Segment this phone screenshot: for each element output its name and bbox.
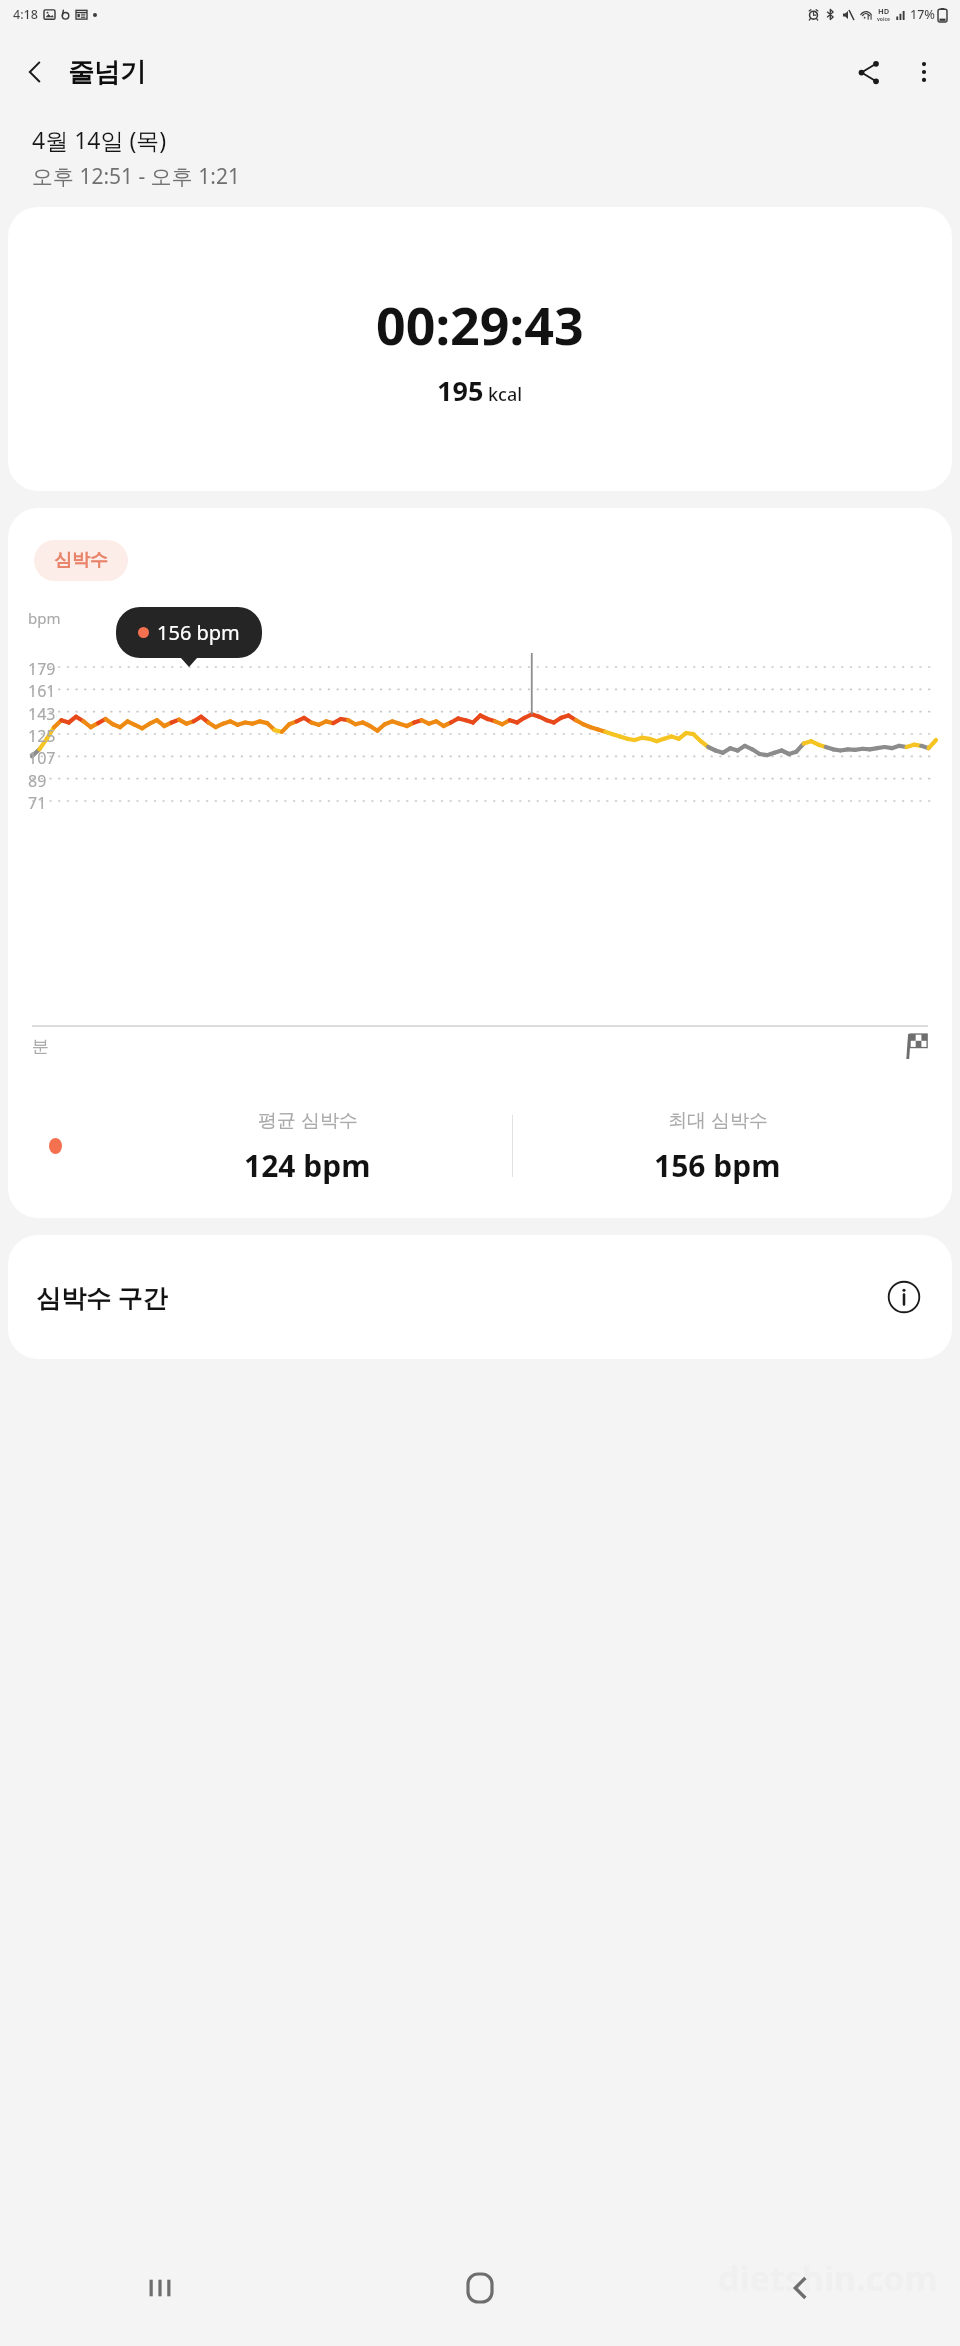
staticText: 평균 심박수 (258, 1107, 358, 1133)
staticText: 오후 12:51 - 오후 1:21 (32, 162, 240, 191)
staticText: 4월 14일 (목) (32, 124, 167, 155)
staticText: 심박수 구간 (36, 1280, 168, 1314)
staticText: 124 bpm (244, 1145, 371, 1186)
staticText: dietshin.com (718, 2255, 938, 2301)
staticText: 4:18 (13, 6, 38, 23)
button[interactable]: More options (898, 46, 950, 98)
button[interactable]: 심박수 (34, 540, 128, 581)
button[interactable]: Back (8, 49, 62, 95)
staticText: voice (877, 16, 891, 23)
button[interactable]: Home (320, 2230, 640, 2346)
staticText: 195 (437, 372, 484, 409)
staticText: 17% (910, 6, 935, 23)
staticText: 156 bpm (654, 1145, 781, 1186)
staticText: 71 (28, 792, 47, 814)
staticText: HD (878, 6, 890, 16)
staticText: 179 (28, 658, 56, 680)
staticText: 00:29:43 (376, 289, 584, 360)
staticText: 89 (28, 770, 47, 792)
button[interactable]: 심박수 구간 (8, 1235, 952, 1359)
staticText: 최대 심박수 (668, 1107, 768, 1133)
button[interactable]: 평균 심박수 (103, 1107, 512, 1186)
staticText: 분 (32, 1036, 49, 1057)
staticText: 107 (28, 747, 56, 769)
button[interactable]: Recents (0, 2230, 320, 2346)
button[interactable]: 최대 심박수 (513, 1107, 922, 1186)
staticText: kcal (488, 382, 523, 407)
staticText: 161 (28, 680, 56, 702)
staticText: 156 bpm (157, 619, 240, 646)
staticText: 143 (28, 703, 56, 725)
button[interactable]: Share (842, 46, 894, 98)
staticText: 줄넘기 (68, 56, 146, 89)
staticText: 심박수 (54, 549, 108, 572)
staticText: 125 (28, 725, 56, 747)
button[interactable]: Information (878, 1271, 930, 1323)
button[interactable]: Back (640, 2230, 960, 2346)
button[interactable]: 00:29:43 (8, 207, 952, 491)
staticText: bpm (28, 608, 61, 628)
